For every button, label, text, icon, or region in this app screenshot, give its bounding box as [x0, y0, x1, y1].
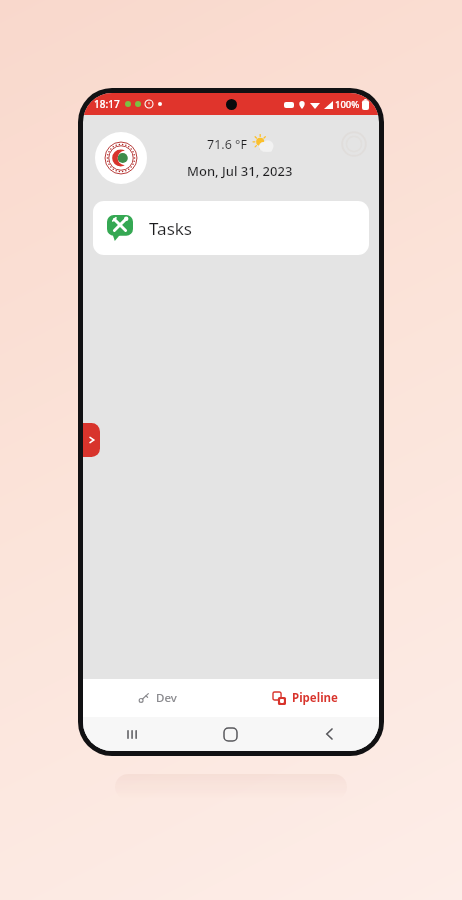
staticText: Tasks	[149, 217, 192, 240]
button[interactable]: Dev	[83, 679, 231, 717]
button[interactable]: Pipeline	[231, 679, 379, 717]
staticText: 100%	[335, 98, 360, 111]
staticText: Mon, Jul 31, 2023	[187, 162, 293, 180]
button[interactable]: Recents	[83, 717, 181, 751]
button[interactable]: Tasks	[93, 201, 369, 255]
button[interactable]: Open side panel	[83, 423, 100, 457]
staticText: Pipeline	[292, 690, 338, 706]
staticText: 18:17	[94, 97, 120, 111]
staticText: 71.6 °F	[207, 136, 247, 153]
button[interactable]: Organisation logo	[95, 132, 147, 184]
staticText: Dev	[156, 690, 177, 706]
button[interactable]: Home	[181, 717, 280, 751]
button[interactable]: Back	[280, 717, 379, 751]
